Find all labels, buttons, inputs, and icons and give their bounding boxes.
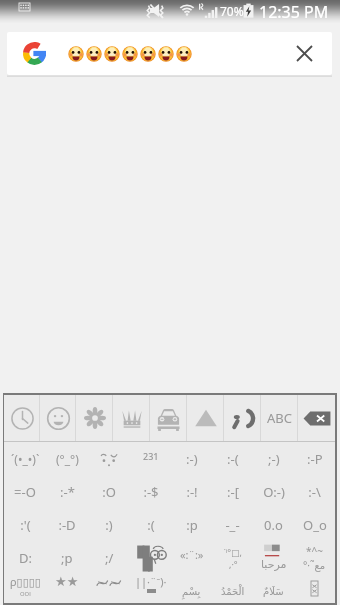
staticText: مرحبا <box>261 558 287 571</box>
staticText: ||·¨⁻)· <box>135 574 167 589</box>
staticText: ★★ <box>55 574 79 589</box>
staticText: :-D <box>58 516 76 534</box>
button[interactable]: *^~ <box>294 541 335 574</box>
staticText: ,·° <box>229 558 238 570</box>
button[interactable]: «:¨:» <box>171 541 212 574</box>
button[interactable]: :O <box>88 475 130 508</box>
button[interactable]: Clear search <box>283 32 326 75</box>
button[interactable]: ABC <box>261 395 298 441</box>
staticText: «:¨:» <box>180 547 204 562</box>
button[interactable]: Places <box>150 395 187 441</box>
staticText: بِسْمِ <box>182 586 201 598</box>
button[interactable]: emoticon <box>171 574 212 603</box>
staticText: سَلَامٌ <box>263 586 284 598</box>
staticText: D: <box>19 549 32 567</box>
staticText: (°_°) <box>56 451 79 467</box>
staticText: :-) <box>186 450 198 468</box>
button[interactable]: =-O <box>4 475 46 508</box>
button[interactable]: emoticon <box>88 574 130 603</box>
button[interactable]: Symbols <box>187 395 224 441</box>
button[interactable]: :( <box>130 508 171 541</box>
staticText: -_- <box>225 516 240 534</box>
button[interactable]: ´(•_•)` <box>4 442 46 475</box>
staticText: الْحَمْدُ <box>221 586 245 598</box>
staticText: ´(•_•)` <box>11 451 40 467</box>
button[interactable]: (°_°) <box>46 442 88 475</box>
staticText: ρ▯▯▯▯ <box>10 574 41 589</box>
button[interactable]: ;p <box>46 541 88 574</box>
staticText: 231 <box>143 450 159 462</box>
button[interactable]: :-P <box>294 442 335 475</box>
button[interactable]: :p <box>171 508 212 541</box>
button[interactable]: :-\ <box>294 475 335 508</box>
staticText: =-O <box>14 483 36 501</box>
staticText: °·˜مع <box>303 558 326 572</box>
staticText: :-P <box>307 450 323 468</box>
staticText: :O <box>102 483 116 501</box>
staticText: ;p <box>61 549 73 567</box>
button[interactable]: -_- <box>212 508 253 541</box>
staticText: ᴼᴼˡ <box>20 589 31 601</box>
button[interactable]: :-[ <box>212 475 253 508</box>
staticText: ˙ⁱ°□, <box>224 546 242 558</box>
staticText: :'( <box>20 516 31 534</box>
button[interactable]: 231 <box>130 442 171 475</box>
staticText: :-\ <box>308 483 321 501</box>
button[interactable]: emoticon <box>212 574 253 603</box>
button[interactable]: 0.o <box>253 508 294 541</box>
button[interactable]: emoticon <box>88 442 130 475</box>
button[interactable]: ★★ <box>46 574 88 603</box>
button[interactable]: :-D <box>46 508 88 541</box>
staticText: :p <box>186 516 198 534</box>
button[interactable]: Delete <box>298 395 335 441</box>
button[interactable]: O:-) <box>253 475 294 508</box>
staticText: :( <box>147 516 155 534</box>
staticText: 0.o <box>264 516 283 534</box>
button[interactable]: emoticon <box>253 541 294 574</box>
button[interactable]: Objects <box>113 395 150 441</box>
button[interactable]: ;/ <box>88 541 130 574</box>
staticText: :) <box>105 516 113 534</box>
staticText: :-( <box>227 450 239 468</box>
button[interactable]: ρ▯▯▯▯ <box>4 574 46 603</box>
button[interactable]: Nature <box>76 395 113 441</box>
button[interactable]: emoticon <box>130 541 171 574</box>
staticText: :-! <box>186 483 198 501</box>
button[interactable]: ˙ⁱ°□, <box>212 541 253 574</box>
button[interactable]: D: <box>4 541 46 574</box>
button[interactable]: :-) <box>171 442 212 475</box>
button[interactable]: emoticon <box>253 574 294 603</box>
button[interactable]: ;-) <box>253 442 294 475</box>
button[interactable]: :-* <box>46 475 88 508</box>
button[interactable]: Music <box>224 395 261 441</box>
button[interactable]: Clear search <box>7 32 332 75</box>
staticText: 70% <box>220 3 244 19</box>
button[interactable]: Recent <box>4 395 40 441</box>
staticText: O_o <box>303 516 327 534</box>
button[interactable]: ||·¨⁻)· <box>130 574 171 603</box>
staticText: :-$ <box>143 483 159 501</box>
button[interactable]: :-! <box>171 475 212 508</box>
button[interactable]: emoticon <box>294 574 335 603</box>
staticText: 12:35 PM <box>259 1 329 23</box>
button[interactable]: Smileys <box>40 395 76 441</box>
button[interactable]: :-( <box>212 442 253 475</box>
staticText: :-* <box>60 483 75 501</box>
button[interactable]: :-$ <box>130 475 171 508</box>
button[interactable]: :) <box>88 508 130 541</box>
staticText: :-[ <box>227 483 239 501</box>
staticText: *^~ <box>306 544 323 558</box>
staticText: ;/ <box>105 549 114 567</box>
staticText: ABC <box>267 409 292 427</box>
staticText: ;-) <box>268 450 280 468</box>
button[interactable]: :'( <box>4 508 46 541</box>
button[interactable]: O_o <box>294 508 335 541</box>
staticText: O:-) <box>263 483 285 501</box>
